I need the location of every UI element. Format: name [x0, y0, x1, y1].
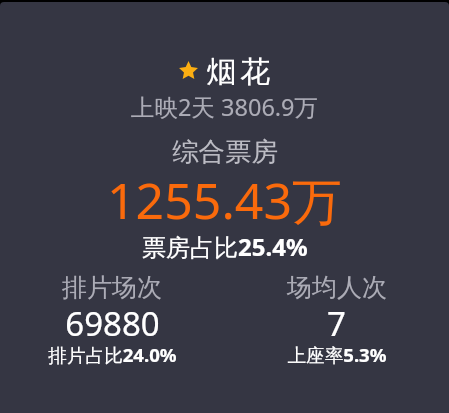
staticText: 7: [327, 301, 346, 346]
staticText: 票房占比25.4%: [142, 230, 308, 263]
button[interactable]: 场均人次: [224, 272, 449, 372]
button[interactable]: 排片场次: [0, 272, 224, 372]
staticText: 排片场次: [62, 272, 162, 303]
staticText: 上映2天 3806.9万: [131, 91, 319, 123]
button[interactable]: Favourite: [179, 53, 272, 91]
other: Favourite: [179, 61, 198, 79]
staticText: 1255.43万: [107, 166, 342, 234]
staticText: 综合票房: [172, 135, 278, 168]
staticText: 排片占比24.0%: [48, 342, 177, 367]
staticText: 上座率5.3%: [287, 342, 387, 367]
staticText: 烟花: [205, 53, 272, 91]
staticText: 场均人次: [287, 272, 387, 303]
staticText: 69880: [65, 301, 160, 346]
